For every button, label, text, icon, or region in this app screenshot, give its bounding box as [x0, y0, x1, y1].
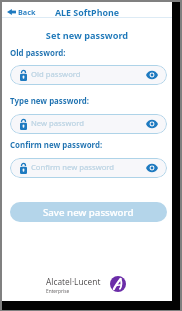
- staticText: Enterprise: [46, 288, 70, 295]
- staticText: Back: [18, 7, 36, 17]
- other: Show password: [146, 120, 158, 128]
- button[interactable]: New password: [10, 114, 167, 134]
- staticText: Save new password: [43, 206, 134, 219]
- button[interactable]: Back: [7, 6, 36, 18]
- staticText: Confirm new password:: [10, 140, 103, 151]
- staticText: Set new password: [2, 29, 172, 42]
- button[interactable]: Save new password: [10, 202, 167, 222]
- staticText: Old password:: [10, 48, 66, 59]
- staticText: Old password: [31, 69, 81, 79]
- other: Show password: [146, 71, 158, 79]
- staticText: Confirm new password: [31, 162, 115, 172]
- staticText: Alcatel·Lucent: [46, 276, 101, 287]
- other: Show password: [146, 164, 158, 172]
- staticText: ALE SoftPhone: [2, 6, 172, 18]
- staticText: New password: [31, 118, 84, 128]
- button[interactable]: Confirm new password: [10, 158, 167, 178]
- staticText: Type new password:: [10, 96, 90, 107]
- button[interactable]: Old password: [10, 65, 167, 85]
